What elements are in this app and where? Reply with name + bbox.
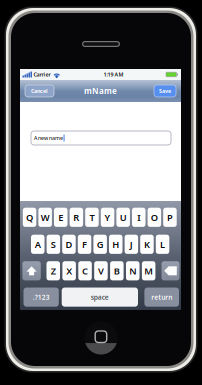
button[interactable]: B (110, 261, 124, 280)
button[interactable]: M (142, 261, 155, 280)
staticText: S (51, 238, 56, 250)
button[interactable]: S (47, 235, 60, 254)
staticText: Carrier (33, 71, 50, 78)
button[interactable]: X (62, 261, 76, 280)
staticText: space (91, 293, 109, 302)
button[interactable]: I (132, 208, 145, 227)
button[interactable]: V (94, 261, 108, 280)
staticText: E (58, 211, 63, 223)
staticText: .?123 (33, 293, 50, 302)
staticText: return (151, 293, 172, 302)
button[interactable]: Delete (161, 261, 179, 280)
staticText: 1:19 AM (103, 71, 123, 78)
staticText: O (151, 211, 158, 223)
staticText: U (120, 211, 127, 223)
button[interactable]: G (93, 235, 107, 254)
button[interactable]: Shift (22, 261, 41, 280)
staticText: mName (84, 86, 117, 96)
staticText: D (65, 238, 72, 250)
staticText: W (41, 211, 50, 223)
button[interactable]: Q (23, 208, 36, 227)
staticText: F (82, 238, 87, 250)
button[interactable]: O (148, 208, 161, 227)
button[interactable]: .?123 (23, 287, 59, 307)
staticText: A (35, 238, 41, 250)
staticText: M (144, 265, 153, 277)
staticText: X (66, 265, 72, 277)
staticText: Z (51, 265, 56, 277)
staticText: G (97, 238, 104, 250)
button[interactable]: K (140, 235, 154, 254)
staticText: H (112, 238, 119, 250)
button[interactable]: space (62, 287, 138, 307)
staticText: K (144, 238, 150, 250)
button[interactable]: P (163, 208, 177, 227)
staticText: P (167, 211, 173, 223)
button[interactable]: F (78, 235, 91, 254)
button[interactable]: L (156, 235, 169, 254)
button[interactable]: W (38, 208, 52, 227)
button[interactable]: Z (46, 261, 60, 280)
button[interactable]: A (31, 235, 44, 254)
button[interactable]: H (109, 235, 122, 254)
button[interactable]: D (62, 235, 76, 254)
staticText: N (129, 265, 136, 277)
button[interactable]: R (70, 208, 83, 227)
button[interactable]: N (126, 261, 139, 280)
staticText: C (82, 265, 88, 277)
button[interactable]: C (78, 261, 92, 280)
button[interactable]: E (54, 208, 67, 227)
button[interactable]: Cancel (25, 85, 54, 97)
staticText: Save (159, 87, 171, 95)
staticText: Y (104, 211, 110, 223)
button[interactable]: U (116, 208, 130, 227)
button[interactable]: T (85, 208, 99, 227)
staticText: Q (26, 211, 33, 223)
button[interactable]: return (144, 287, 179, 307)
staticText: J (130, 238, 133, 250)
staticText: R (73, 211, 79, 223)
button[interactable]: J (125, 235, 138, 254)
button[interactable]: Save (154, 85, 176, 97)
button[interactable]: Y (101, 208, 114, 227)
staticText: B (114, 265, 120, 277)
staticText: L (160, 238, 165, 250)
staticText: I (137, 211, 140, 223)
staticText: T (89, 211, 94, 223)
staticText: Cancel (31, 87, 48, 95)
staticText: V (98, 265, 104, 277)
staticText: A new name (34, 134, 63, 142)
